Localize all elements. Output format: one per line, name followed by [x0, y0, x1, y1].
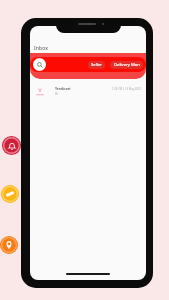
button[interactable]: Coupons	[1, 185, 19, 203]
button[interactable]: Seller	[30, 57, 146, 72]
staticText: Inbox	[34, 44, 48, 51]
button[interactable]: Delivery Man	[110, 61, 143, 69]
button[interactable]: Location	[0, 236, 18, 254]
staticText: Yendicart	[55, 86, 71, 91]
staticText: Hi	[55, 92, 58, 96]
button[interactable]: Notifications	[2, 136, 21, 155]
staticText: Delivery Man	[114, 62, 140, 68]
button[interactable]: Yendicart	[30, 81, 146, 101]
staticText: 1:28 PM | 14 May 2023	[112, 87, 141, 91]
button[interactable]: Seller	[88, 61, 105, 69]
staticText: Seller	[91, 62, 102, 68]
